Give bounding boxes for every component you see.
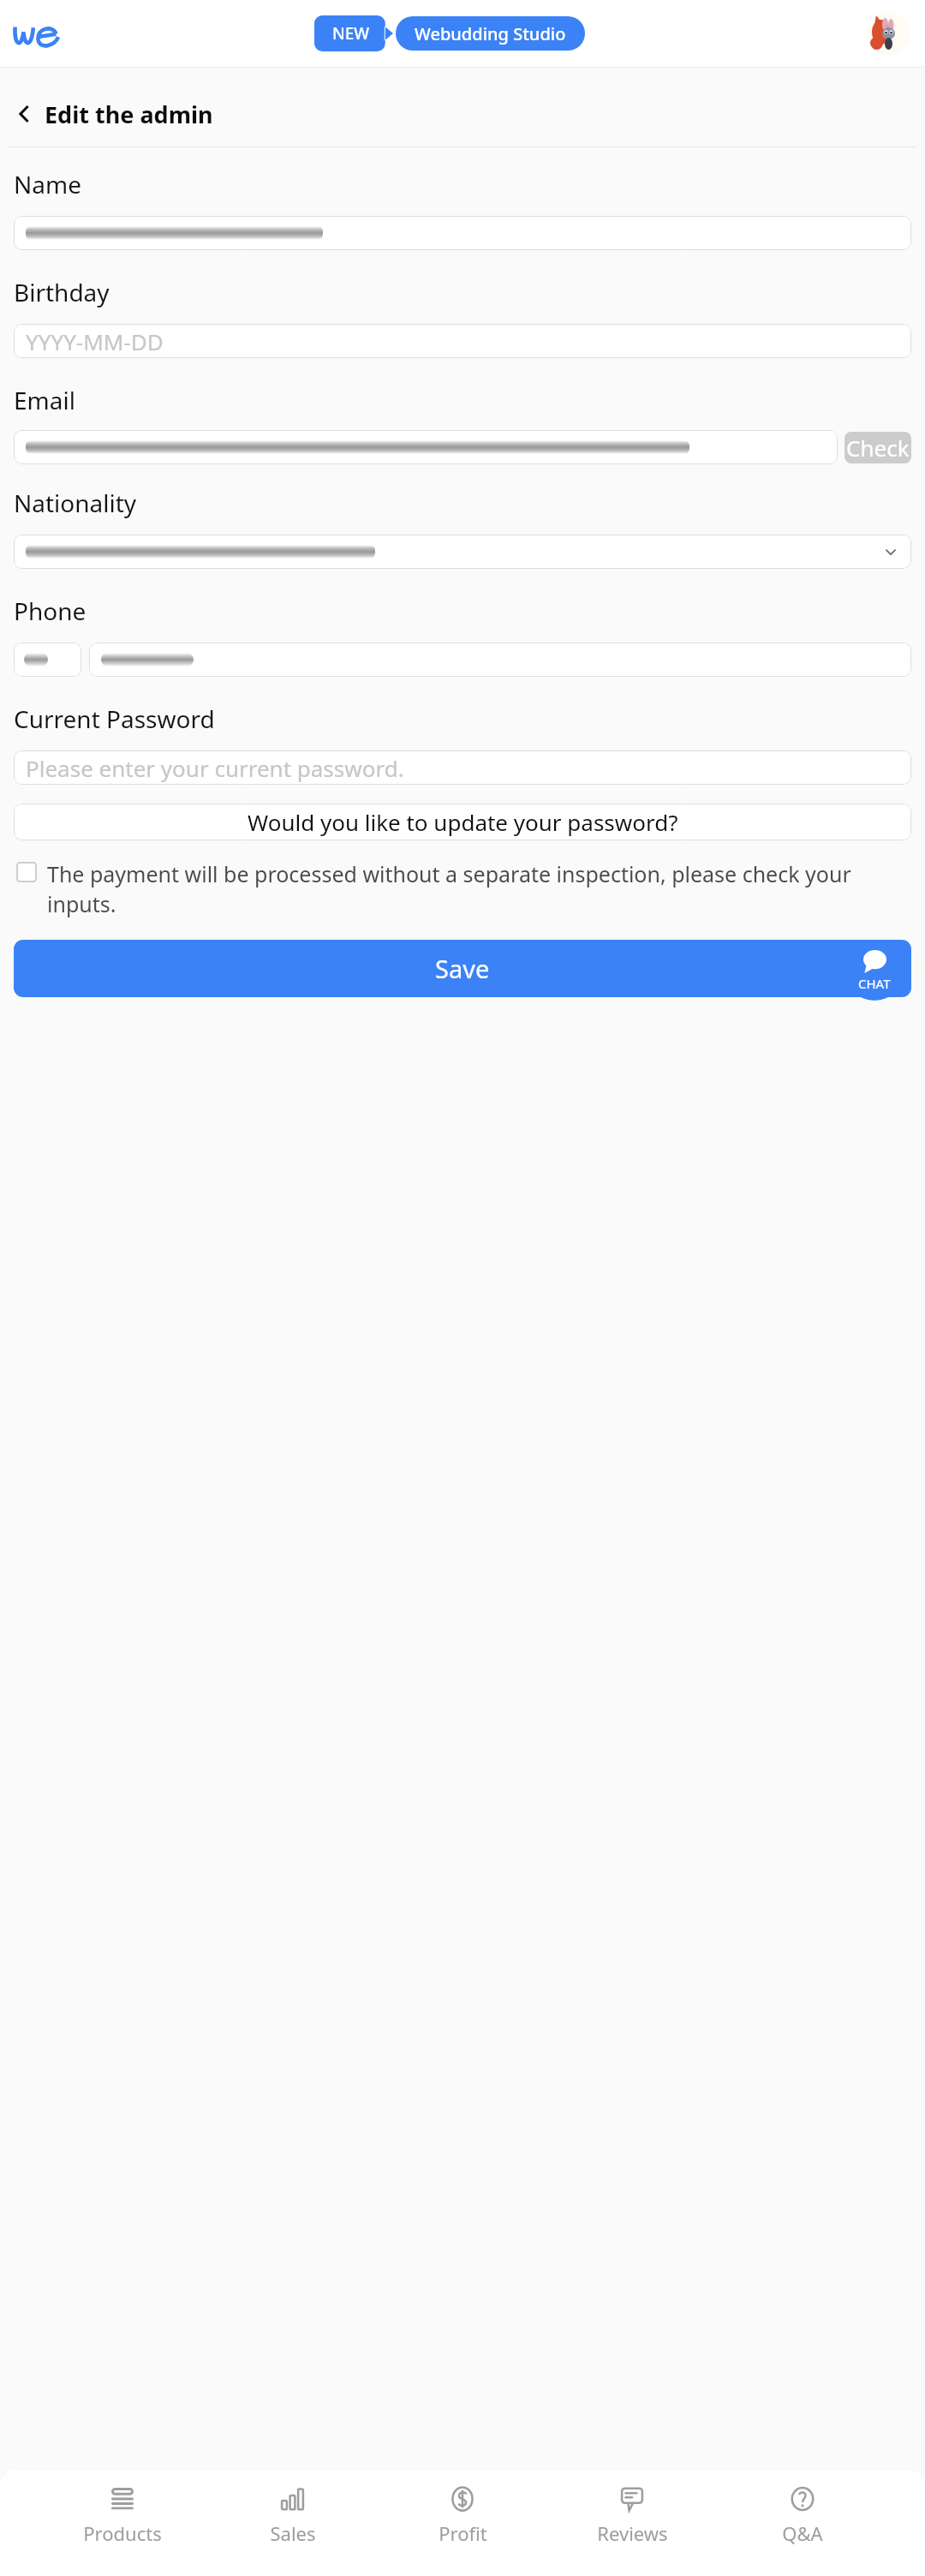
button[interactable]: YYYY-MM-DD [14, 324, 911, 358]
staticText: Birthday [14, 276, 110, 308]
button[interactable]: Back [12, 90, 925, 138]
button[interactable]: Chat [844, 941, 904, 1001]
button[interactable]: Save [14, 940, 911, 997]
button[interactable]: NEW [314, 15, 393, 51]
staticText: Q&A [782, 2520, 823, 2546]
staticText: Reviews [597, 2520, 668, 2546]
button[interactable]: Reviews [585, 2481, 679, 2549]
button[interactable]: Check [844, 432, 911, 463]
staticText: Phone [14, 595, 87, 627]
button[interactable]: Profit [415, 2481, 510, 2549]
other: Back [12, 101, 38, 127]
button[interactable] [14, 216, 911, 250]
button[interactable] [89, 643, 911, 677]
staticText: Email [14, 384, 75, 416]
staticText: YYYY-MM-DD [26, 326, 164, 356]
button[interactable]: Webudding Studio [396, 16, 585, 51]
button[interactable]: Products [75, 2481, 170, 2549]
staticText: Name [14, 168, 81, 200]
button[interactable]: Sales [246, 2481, 340, 2549]
staticText: Current Password [14, 702, 215, 735]
button[interactable]: The payment will be processed without a … [14, 859, 911, 919]
button[interactable]: Profile [867, 12, 910, 55]
staticText: NEW [332, 22, 370, 45]
button[interactable]: Q&A [755, 2481, 850, 2549]
staticText: Save [435, 952, 490, 985]
button[interactable]: Expand [14, 535, 911, 569]
other: Expand [882, 543, 899, 560]
staticText: Edit the admin [45, 99, 213, 130]
staticText: Would you like to update your password? [248, 807, 678, 837]
button[interactable] [14, 643, 81, 677]
staticText: Please enter your current password. [26, 753, 404, 783]
staticText: Nationality [14, 487, 137, 519]
staticText: Check [846, 433, 910, 463]
staticText: Webudding Studio [415, 22, 566, 45]
staticText: CHAT [858, 975, 891, 992]
button[interactable] [14, 430, 838, 464]
staticText: The payment will be processed without a … [47, 859, 911, 919]
staticText: Products [83, 2520, 162, 2546]
button[interactable]: Would you like to update your password? [14, 804, 911, 840]
button[interactable]: Please enter your current password. [14, 750, 911, 785]
staticText: Profit [439, 2520, 487, 2546]
staticText: Sales [270, 2520, 316, 2546]
